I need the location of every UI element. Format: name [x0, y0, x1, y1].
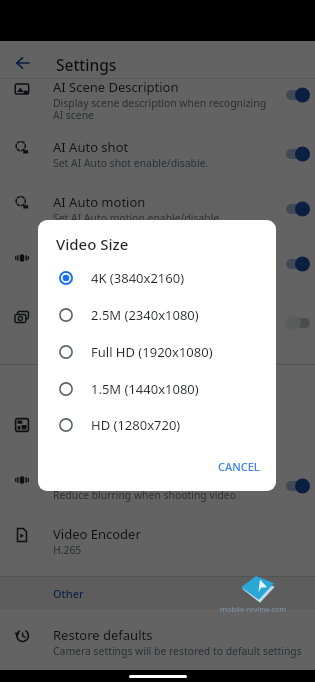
staticText: Set AI Auto motion enable/disable. — [53, 211, 223, 225]
button[interactable]: AI Auto motion — [286, 201, 310, 217]
button[interactable]: 1.5M (1440x1080) — [38, 371, 276, 407]
button[interactable]: 4K (3840x2160) — [38, 260, 276, 296]
staticText: 1.5M (1440x1080) — [91, 380, 199, 398]
staticText: 4K (3840x2160) — [91, 269, 185, 287]
button[interactable]: Full HD (1920x1080) — [38, 334, 276, 370]
staticText: AI Auto motion — [53, 193, 146, 211]
staticText: Reduce blurring when shooting video — [53, 488, 236, 502]
staticText: HD (1280x720) — [91, 416, 181, 434]
button[interactable]: AI Auto shot — [286, 146, 310, 162]
button[interactable]: Video stabilization — [286, 478, 310, 494]
staticText: Mirror front camera — [53, 307, 175, 325]
staticText: Other — [53, 586, 84, 601]
staticText: AI Auto shot — [53, 138, 129, 156]
button[interactable]: 2.5M (2340x1080) — [38, 297, 276, 333]
staticText: Video Size — [53, 414, 115, 432]
staticText: Play sound when taking photo — [53, 266, 202, 280]
staticText: Video Encoder — [53, 525, 141, 543]
staticText: Display scene description when recognizi… — [53, 96, 267, 122]
staticText: CANCEL — [218, 459, 260, 474]
staticText: Full HD (1920x1080) — [91, 343, 213, 361]
button[interactable]: CANCEL — [210, 453, 268, 480]
staticText: Settings — [56, 54, 117, 75]
staticText: Camera settings will be restored to defa… — [53, 644, 302, 658]
staticText: Shutter sound — [53, 248, 140, 266]
staticText: Restore defaults — [53, 626, 153, 644]
button[interactable]: Back — [11, 52, 33, 74]
button[interactable]: AI Scene Description — [286, 87, 310, 103]
button[interactable]: HD (1280x720) — [38, 407, 276, 443]
button[interactable]: Mirror front camera — [286, 315, 310, 331]
staticText: Set AI Auto shot enable/disable. — [53, 156, 209, 170]
staticText: mobile-review.com — [220, 604, 287, 614]
staticText: Video Size — [56, 234, 129, 254]
staticText: 2.5M (2340x1080) — [91, 306, 199, 324]
staticText: H.265 — [53, 543, 82, 557]
staticText: AI Scene Description — [53, 78, 179, 96]
button[interactable]: Shutter sound — [286, 256, 310, 272]
